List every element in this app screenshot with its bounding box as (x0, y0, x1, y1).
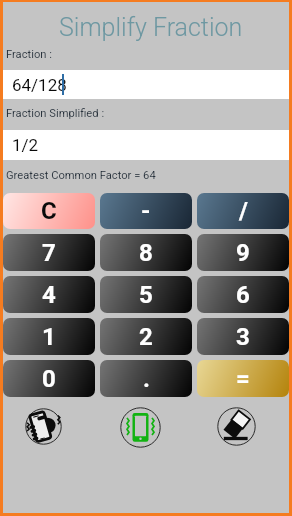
button[interactable]: Vibration (120, 407, 161, 448)
staticText: / (239, 197, 248, 225)
button[interactable]: 5 (100, 276, 192, 313)
button[interactable]: Erase (217, 407, 256, 446)
staticText: Simplify Fraction (59, 13, 243, 41)
staticText: 1/2 (12, 135, 39, 155)
button[interactable]: 1 (3, 318, 95, 355)
staticText: 6 (236, 281, 250, 309)
staticText: 5 (139, 281, 153, 309)
button[interactable]: . (100, 360, 192, 397)
staticText: 0 (42, 365, 56, 393)
staticText: Fraction : (6, 48, 52, 61)
staticText: 1 (42, 323, 56, 351)
staticText: 8 (139, 239, 153, 267)
button[interactable]: Vibrate hand (25, 408, 62, 445)
button[interactable]: 9 (197, 234, 289, 271)
button[interactable]: - (100, 193, 192, 229)
button[interactable]: 8 (100, 234, 192, 271)
button[interactable]: / (197, 193, 289, 229)
staticText: Fraction Simplified : (6, 107, 105, 120)
staticText: 9 (236, 239, 250, 267)
staticText: 64/128 (12, 75, 67, 95)
staticText: 2 (139, 323, 153, 351)
button[interactable]: 6 (197, 276, 289, 313)
staticText: 4 (42, 281, 56, 309)
button[interactable]: 7 (3, 234, 95, 271)
staticText: . (143, 365, 150, 393)
button[interactable]: 0 (3, 360, 95, 397)
button[interactable]: 4 (3, 276, 95, 313)
staticText: C (41, 197, 57, 225)
button[interactable]: = (197, 360, 289, 397)
staticText: 3 (236, 323, 250, 351)
staticText: - (141, 197, 151, 225)
staticText: = (236, 365, 250, 393)
staticText: Greatest Common Factor = 64 (6, 169, 156, 182)
button[interactable]: 2 (100, 318, 192, 355)
button[interactable]: 3 (197, 318, 289, 355)
staticText: 7 (42, 239, 56, 267)
button[interactable]: C (3, 193, 95, 229)
